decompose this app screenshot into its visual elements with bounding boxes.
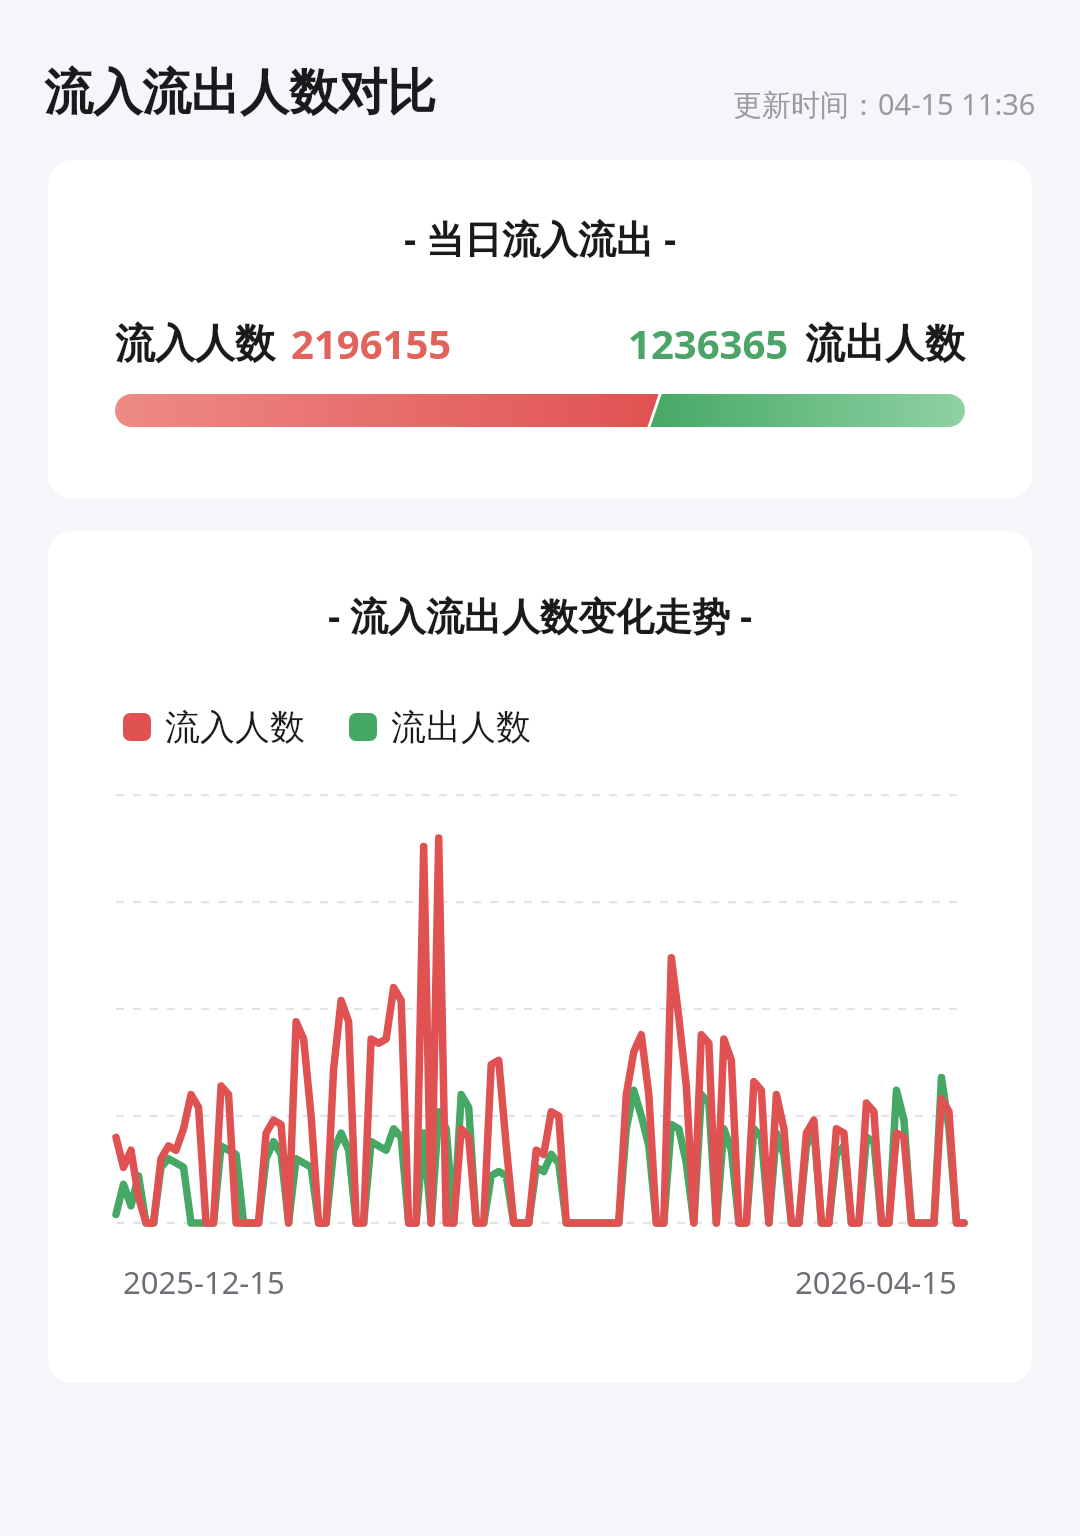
staticText: - 流入流出人数变化走势 - xyxy=(48,589,1032,641)
button[interactable]: - 当日流入流出 - xyxy=(48,160,1032,499)
staticText: 更新时间：04-15 11:36 xyxy=(733,84,1036,124)
staticText: 2026-04-15 xyxy=(795,1261,957,1303)
staticText: 流出人数 xyxy=(391,705,531,749)
staticText: 2025-12-15 xyxy=(123,1261,285,1303)
staticText: 流入流出人数对比 xyxy=(44,62,436,124)
staticText: 1236365 xyxy=(628,316,789,370)
staticText: 流入人数 xyxy=(115,318,275,368)
staticText: - 当日流入流出 - xyxy=(48,212,1032,264)
staticText: 流出人数 xyxy=(805,318,965,368)
staticText: 2196155 xyxy=(291,316,452,370)
button[interactable]: - 流入流出人数变化走势 - xyxy=(48,531,1032,1383)
staticText: 流入人数 xyxy=(165,705,305,749)
